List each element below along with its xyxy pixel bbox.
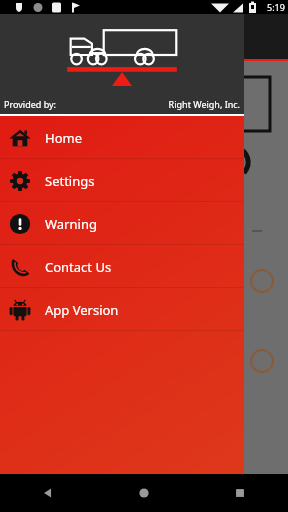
button[interactable]: Warning [0,202,244,245]
staticText: Provided by: [4,98,56,110]
staticText: Contact Us [45,258,112,276]
button[interactable]: Home [96,474,192,512]
staticText: App Version [45,301,119,319]
staticText: 5:19 [267,1,285,13]
button[interactable]: Contact Us [0,245,244,288]
button[interactable]: Settings [0,159,244,202]
button[interactable]: Home [0,116,244,159]
button[interactable]: Recent apps [192,474,288,512]
staticText: Right Weigh, Inc. [168,98,240,110]
staticText: Ride Height Indicator [12,27,162,47]
button[interactable]: App Version [0,288,244,331]
button[interactable]: Back [0,474,96,512]
staticText: Home [45,129,82,147]
staticText: Warning [45,215,97,233]
staticText: Settings [45,172,95,190]
